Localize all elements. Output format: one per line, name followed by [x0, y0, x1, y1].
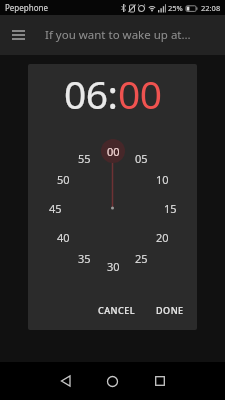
button[interactable]: CANCEL	[92, 300, 142, 320]
staticText: 05	[135, 151, 148, 166]
staticText: 15	[164, 201, 177, 216]
staticText: 40	[57, 230, 70, 245]
button[interactable]: 50	[51, 171, 75, 187]
staticText: DONE	[156, 304, 184, 316]
button[interactable]	[136, 362, 183, 400]
button[interactable]: 25	[129, 250, 153, 266]
button[interactable]: 45	[43, 200, 67, 216]
staticText: 00	[118, 67, 162, 120]
button[interactable]: 55	[72, 150, 96, 166]
staticText: 25%	[168, 3, 183, 13]
staticText: If you want to wake up at…	[45, 27, 191, 43]
staticText: 55	[78, 151, 91, 166]
staticText: 22:08	[201, 3, 221, 13]
staticText: CANCEL	[98, 304, 136, 316]
staticText: 50	[57, 172, 70, 187]
button[interactable]: 10	[150, 171, 174, 187]
button[interactable]: DONE	[150, 300, 190, 320]
staticText: 10	[156, 172, 169, 187]
button[interactable]: 35	[72, 250, 96, 266]
staticText: 00	[107, 144, 120, 159]
staticText: Pepephone	[5, 2, 48, 13]
button[interactable]	[42, 362, 89, 400]
button[interactable]: 05	[129, 150, 153, 166]
button[interactable]: 15	[158, 200, 182, 216]
staticText: 06:	[64, 67, 118, 120]
staticText: 45	[49, 201, 62, 216]
staticText: 25	[135, 251, 148, 266]
staticText: 30	[107, 259, 120, 274]
button[interactable]	[0, 15, 36, 55]
button[interactable]: 20	[150, 229, 174, 245]
button[interactable]	[89, 362, 136, 400]
button[interactable]: 30	[101, 258, 125, 274]
button[interactable]: 00	[101, 139, 125, 163]
button[interactable]: 40	[51, 229, 75, 245]
staticText: 20	[156, 230, 169, 245]
staticText: 35	[78, 251, 91, 266]
